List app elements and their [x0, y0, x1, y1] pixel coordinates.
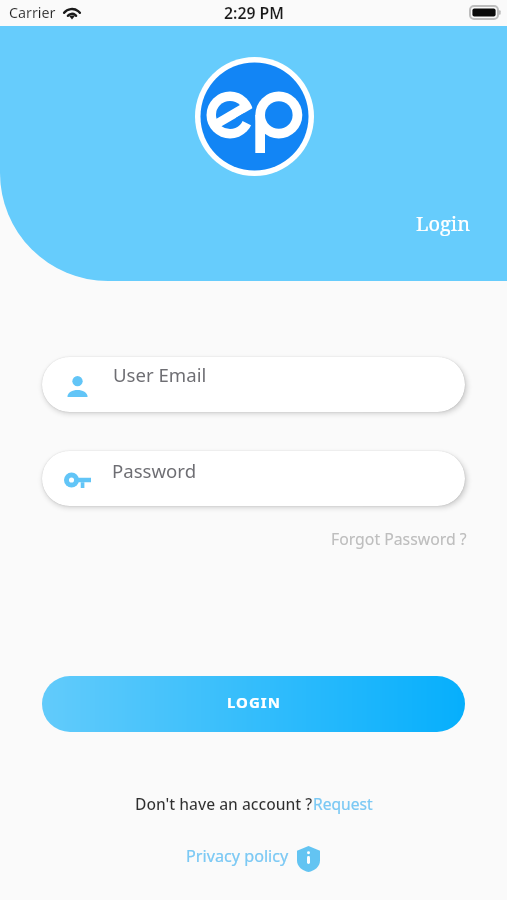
staticText: Password: [112, 458, 197, 483]
button[interactable]: Login: [416, 210, 471, 237]
staticText: Privacy policy: [186, 845, 289, 867]
other: Privacy info: [297, 846, 320, 872]
staticText: 2:29 PM: [224, 2, 284, 24]
button[interactable]: User Email: [42, 357, 465, 412]
button[interactable]: LOGIN: [42, 676, 465, 732]
staticText: Don't have an account ?: [135, 793, 313, 814]
staticText: User Email: [113, 362, 207, 387]
button[interactable]: Forgot Password ?: [331, 528, 467, 550]
other: Wi-Fi: [62, 6, 82, 19]
other: Battery: [470, 6, 501, 19]
staticText: LOGIN: [227, 692, 281, 712]
other: ep logo: [195, 57, 314, 176]
staticText: Carrier: [9, 3, 56, 22]
button[interactable]: Privacy policy: [186, 843, 320, 869]
button[interactable]: Request: [313, 793, 373, 814]
button[interactable]: Password: [42, 451, 465, 506]
